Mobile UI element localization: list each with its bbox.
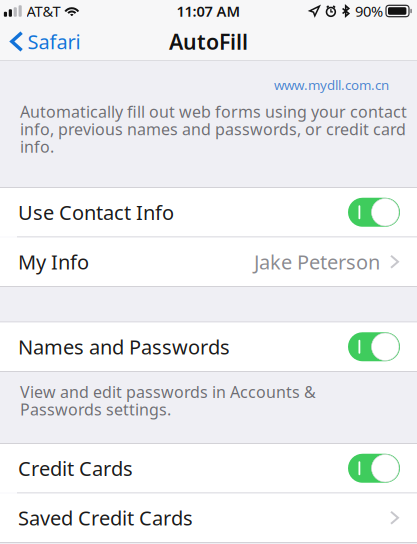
staticText: www.mydll.com.cn [274,76,389,94]
staticText: Automatically fill out web forms using y… [20,101,407,122]
staticText: Use Contact Info [18,199,174,226]
staticText: 11:07 AM [176,1,240,21]
button[interactable]: Names and Passwords [0,322,417,371]
staticText: AT&T [27,1,61,21]
staticText: AutoFill [169,27,248,56]
staticText: Saved Credit Cards [18,504,193,531]
button[interactable]: Safari [0,20,80,63]
staticText: View and edit passwords in Accounts & [20,381,316,402]
staticText: Names and Passwords [18,333,230,360]
staticText: info. [20,136,54,157]
staticText: Jake Peterson [254,248,380,275]
staticText: info, previous names and passwords, or c… [20,118,406,139]
staticText: Passwords settings. [20,399,171,420]
staticText: My Info [18,248,89,275]
button[interactable]: Saved Credit Cards [0,493,417,542]
button[interactable]: Credit Cards [0,444,417,492]
button[interactable]: My Info [0,237,417,286]
staticText: 90% [355,1,383,21]
button[interactable]: Use Contact Info [0,188,417,236]
staticText: Safari [27,28,80,55]
staticText: Credit Cards [18,455,133,482]
